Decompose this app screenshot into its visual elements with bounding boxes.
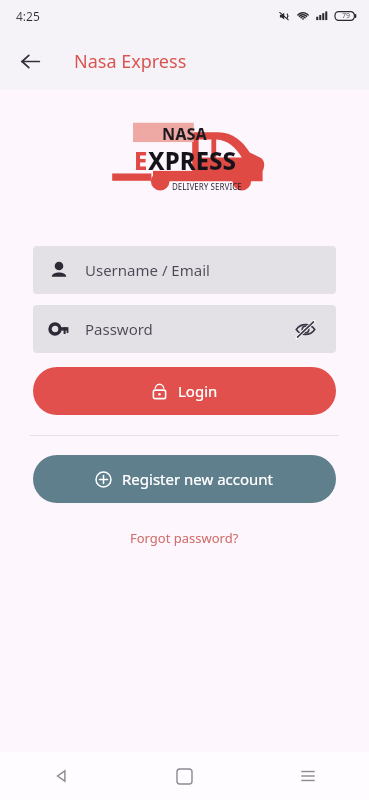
staticText: E [134,144,148,177]
staticText: Username / Email [85,260,210,280]
staticText: DELIVERY SERVICE [172,181,242,192]
button[interactable]: Forgot password? [120,525,249,551]
button[interactable]: Show password [290,314,320,344]
button[interactable]: Recent apps [246,752,369,800]
staticText: XPRESS [148,144,236,177]
button[interactable]: Home [123,752,246,800]
staticText: 4:25 [16,8,40,24]
button[interactable]: Register new account [33,455,336,503]
staticText: NASA [162,123,207,145]
button[interactable]: Login [33,367,336,415]
staticText: Forgot password? [130,529,239,547]
staticText: Nasa Express [74,49,187,74]
staticText: Password [85,319,153,339]
staticText: 79 [342,11,351,21]
button[interactable]: Password [33,305,336,353]
staticText: Register new account [122,469,274,489]
button[interactable]: Username / Email [33,246,336,294]
button[interactable]: Back [8,39,52,83]
button[interactable]: Back [0,752,123,800]
staticText: Login [178,381,218,401]
